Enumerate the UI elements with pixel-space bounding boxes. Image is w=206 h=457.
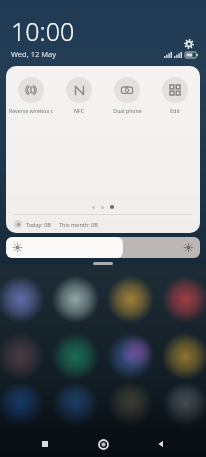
button[interactable]: Home (90, 431, 116, 457)
button[interactable]: Recent apps (32, 431, 58, 457)
button[interactable]: Reverse wireless c (8, 75, 54, 116)
staticText: Dual phone (113, 107, 142, 114)
staticText: Today: 0B (26, 221, 51, 228)
button[interactable]: Dual phone (104, 75, 150, 116)
staticText: Reverse wireless c (9, 107, 53, 114)
button[interactable]: NFC (56, 75, 102, 116)
staticText: This month: 0B (59, 221, 98, 228)
button[interactable]: Edit (152, 75, 198, 116)
staticText: Edit (170, 107, 180, 114)
button[interactable]: Settings (181, 36, 197, 52)
staticText: NFC (74, 107, 84, 114)
staticText: 10:00 (11, 14, 75, 48)
button[interactable]: Today: 0B (13, 219, 99, 229)
button[interactable]: Back (148, 431, 174, 457)
button[interactable]: Brightness (6, 237, 200, 258)
staticText: Wed, 12 May (11, 49, 56, 59)
